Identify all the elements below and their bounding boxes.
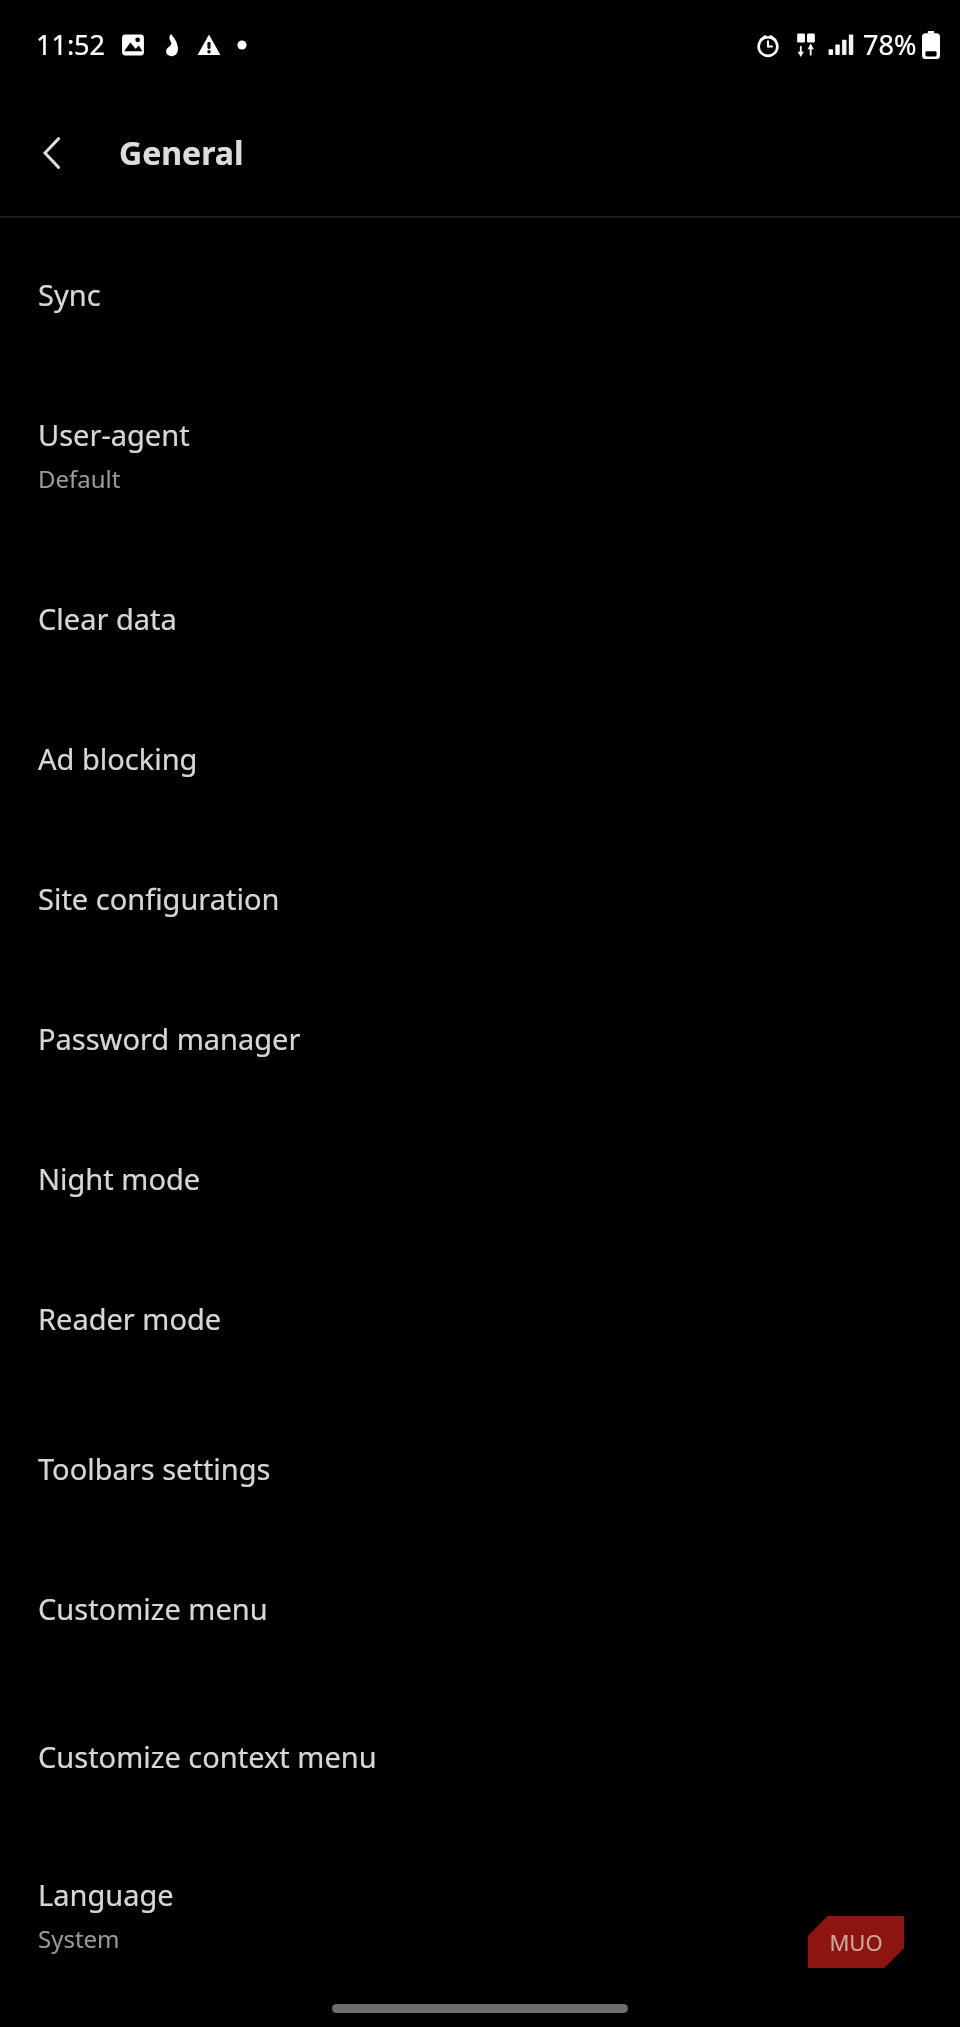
- staticText: General: [119, 131, 244, 175]
- button[interactable]: Back: [10, 110, 96, 196]
- staticText: System: [38, 1922, 120, 1955]
- staticText: Site configuration: [38, 879, 280, 918]
- staticText: Toolbars settings: [38, 1449, 271, 1488]
- button[interactable]: Password manager: [0, 980, 960, 1096]
- button[interactable]: Language: [0, 1840, 960, 1990]
- staticText: Password manager: [38, 1019, 301, 1058]
- staticText: Reader mode: [38, 1299, 222, 1338]
- staticText: Night mode: [38, 1159, 201, 1198]
- button[interactable]: Night mode: [0, 1120, 960, 1236]
- button[interactable]: User-agent: [0, 380, 960, 530]
- button[interactable]: Ad blocking: [0, 700, 960, 816]
- button[interactable]: Customize menu: [0, 1550, 960, 1666]
- button[interactable]: Customize context menu: [0, 1698, 960, 1814]
- button[interactable]: Sync: [0, 236, 960, 352]
- staticText: Default: [38, 462, 121, 495]
- button[interactable]: Clear data: [0, 560, 960, 676]
- staticText: Language: [38, 1875, 174, 1914]
- staticText: Customize menu: [38, 1589, 268, 1628]
- button[interactable]: Site configuration: [0, 840, 960, 956]
- staticText: MUO: [829, 1927, 883, 1957]
- staticText: Ad blocking: [38, 739, 198, 778]
- staticText: Clear data: [38, 599, 177, 638]
- button[interactable]: Toolbars settings: [0, 1410, 960, 1526]
- button[interactable]: Reader mode: [0, 1260, 960, 1376]
- staticText: Sync: [38, 275, 101, 314]
- staticText: 11:52: [36, 26, 106, 63]
- staticText: User-agent: [38, 415, 190, 454]
- staticText: 78%: [863, 26, 917, 63]
- staticText: Customize context menu: [38, 1737, 377, 1776]
